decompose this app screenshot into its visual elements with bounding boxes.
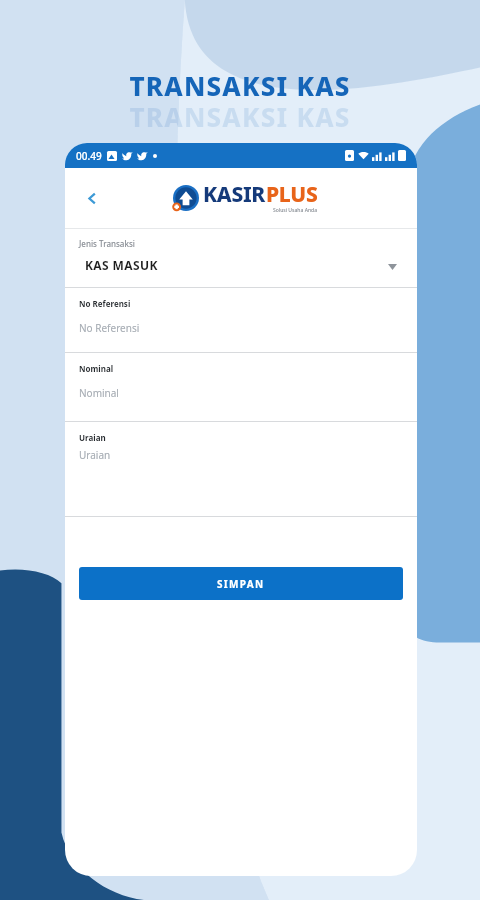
staticText: TRANSAKSI KAS [129, 68, 351, 103]
staticText: Solusi Usaha Anda [273, 207, 318, 214]
button[interactable]: Jenis Transaksi [65, 229, 417, 287]
staticText: Nominal [79, 386, 119, 400]
staticText: SIMPAN [217, 577, 265, 591]
staticText: No Referensi [79, 298, 131, 309]
staticText: TRANSAKSI KAS [129, 99, 351, 134]
button[interactable]: SIMPAN [79, 567, 403, 600]
button[interactable]: Nominal [65, 353, 417, 421]
button[interactable]: No Referensi [65, 288, 417, 352]
button[interactable]: Uraian [65, 422, 417, 516]
staticText: PLUS [266, 180, 318, 209]
staticText: KASIR [203, 180, 266, 209]
staticText: KAS MASUK [85, 257, 158, 273]
staticText: Uraian [79, 432, 106, 443]
staticText: Nominal [79, 363, 114, 374]
staticText: Uraian [79, 448, 111, 462]
staticText: 00.49 [76, 149, 102, 163]
button[interactable]: Back [78, 184, 106, 212]
staticText: Jenis Transaksi [79, 238, 135, 249]
staticText: No Referensi [79, 321, 140, 335]
